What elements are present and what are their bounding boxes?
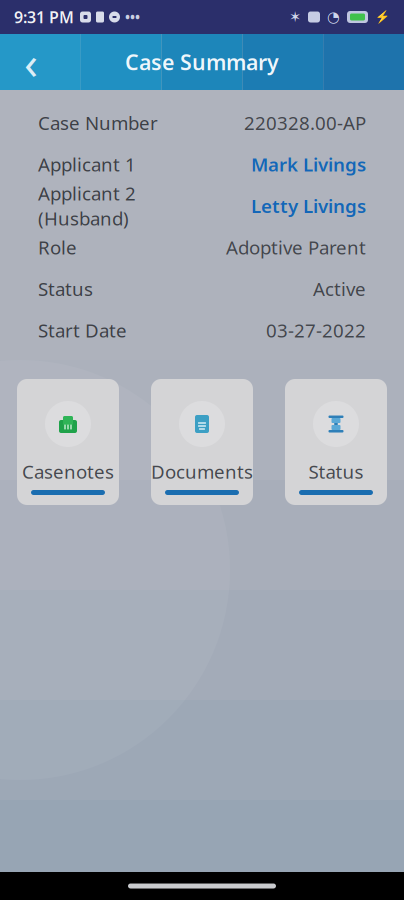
staticText: Start Date [38, 318, 127, 343]
button[interactable]: Back [8, 34, 54, 90]
staticText: Mark Livings [251, 152, 366, 177]
staticText: ✶ [289, 9, 301, 25]
staticText: 220328.00-AP [244, 110, 366, 135]
staticText: Adoptive Parent [226, 235, 366, 260]
button[interactable]: Status [285, 379, 387, 505]
staticText: Letty Livings [251, 193, 366, 218]
staticText: Casenotes [22, 459, 114, 484]
staticText: Applicant 2 (Husband) [38, 181, 136, 231]
staticText: Documents [151, 459, 253, 484]
staticText: Case Number [38, 110, 158, 135]
staticText: Active [313, 276, 366, 301]
staticText: ••• [125, 8, 140, 26]
staticText: Applicant 1 [38, 152, 136, 177]
button[interactable]: Documents [151, 379, 253, 505]
staticText: 03-27-2022 [266, 318, 366, 343]
staticText: Case Summary [125, 48, 279, 76]
staticText: Status [308, 459, 363, 484]
staticText: ◔ [327, 9, 340, 25]
button[interactable]: Casenotes [17, 379, 119, 505]
staticText: ‹ [24, 32, 38, 92]
staticText: Role [38, 235, 77, 260]
staticText: Status [38, 276, 93, 301]
staticText: 9:31 PM [14, 6, 74, 28]
staticText: ⚡ [375, 10, 390, 24]
